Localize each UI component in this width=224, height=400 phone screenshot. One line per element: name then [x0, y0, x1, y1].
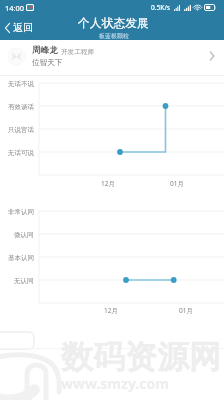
staticText: 板蓝根颗粒: [99, 32, 129, 40]
staticText: 14:00: [5, 3, 24, 13]
other: Open profile: [205, 49, 219, 63]
staticText: 基本认同: [8, 254, 34, 262]
staticText: 无话不说: [8, 80, 34, 88]
staticText: 01月: [170, 179, 184, 188]
staticText: 01月: [179, 306, 193, 315]
staticText: www.smzy.com: [61, 374, 169, 393]
staticText: 无认同: [14, 277, 34, 285]
staticText: 返回: [13, 21, 33, 34]
staticText: 数码资源网: [61, 337, 221, 377]
staticText: 只说官话: [8, 126, 34, 134]
staticText: 周峰龙: [32, 45, 58, 56]
staticText: 个人状态发展: [78, 16, 149, 31]
staticText: 12月: [101, 179, 115, 188]
staticText: 微认同: [14, 231, 34, 239]
staticText: 非常认同: [8, 208, 34, 216]
staticText: 位智天下: [32, 58, 63, 68]
staticText: 有效谈话: [8, 103, 34, 111]
button[interactable]: 返回: [0, 21, 39, 34]
staticText: 无话可说: [8, 149, 34, 157]
staticText: 开发工程师: [61, 48, 94, 56]
staticText: 12月: [104, 306, 118, 315]
button[interactable]: 周峰龙: [7, 42, 224, 70]
staticText: 0.5K/s: [151, 3, 171, 12]
